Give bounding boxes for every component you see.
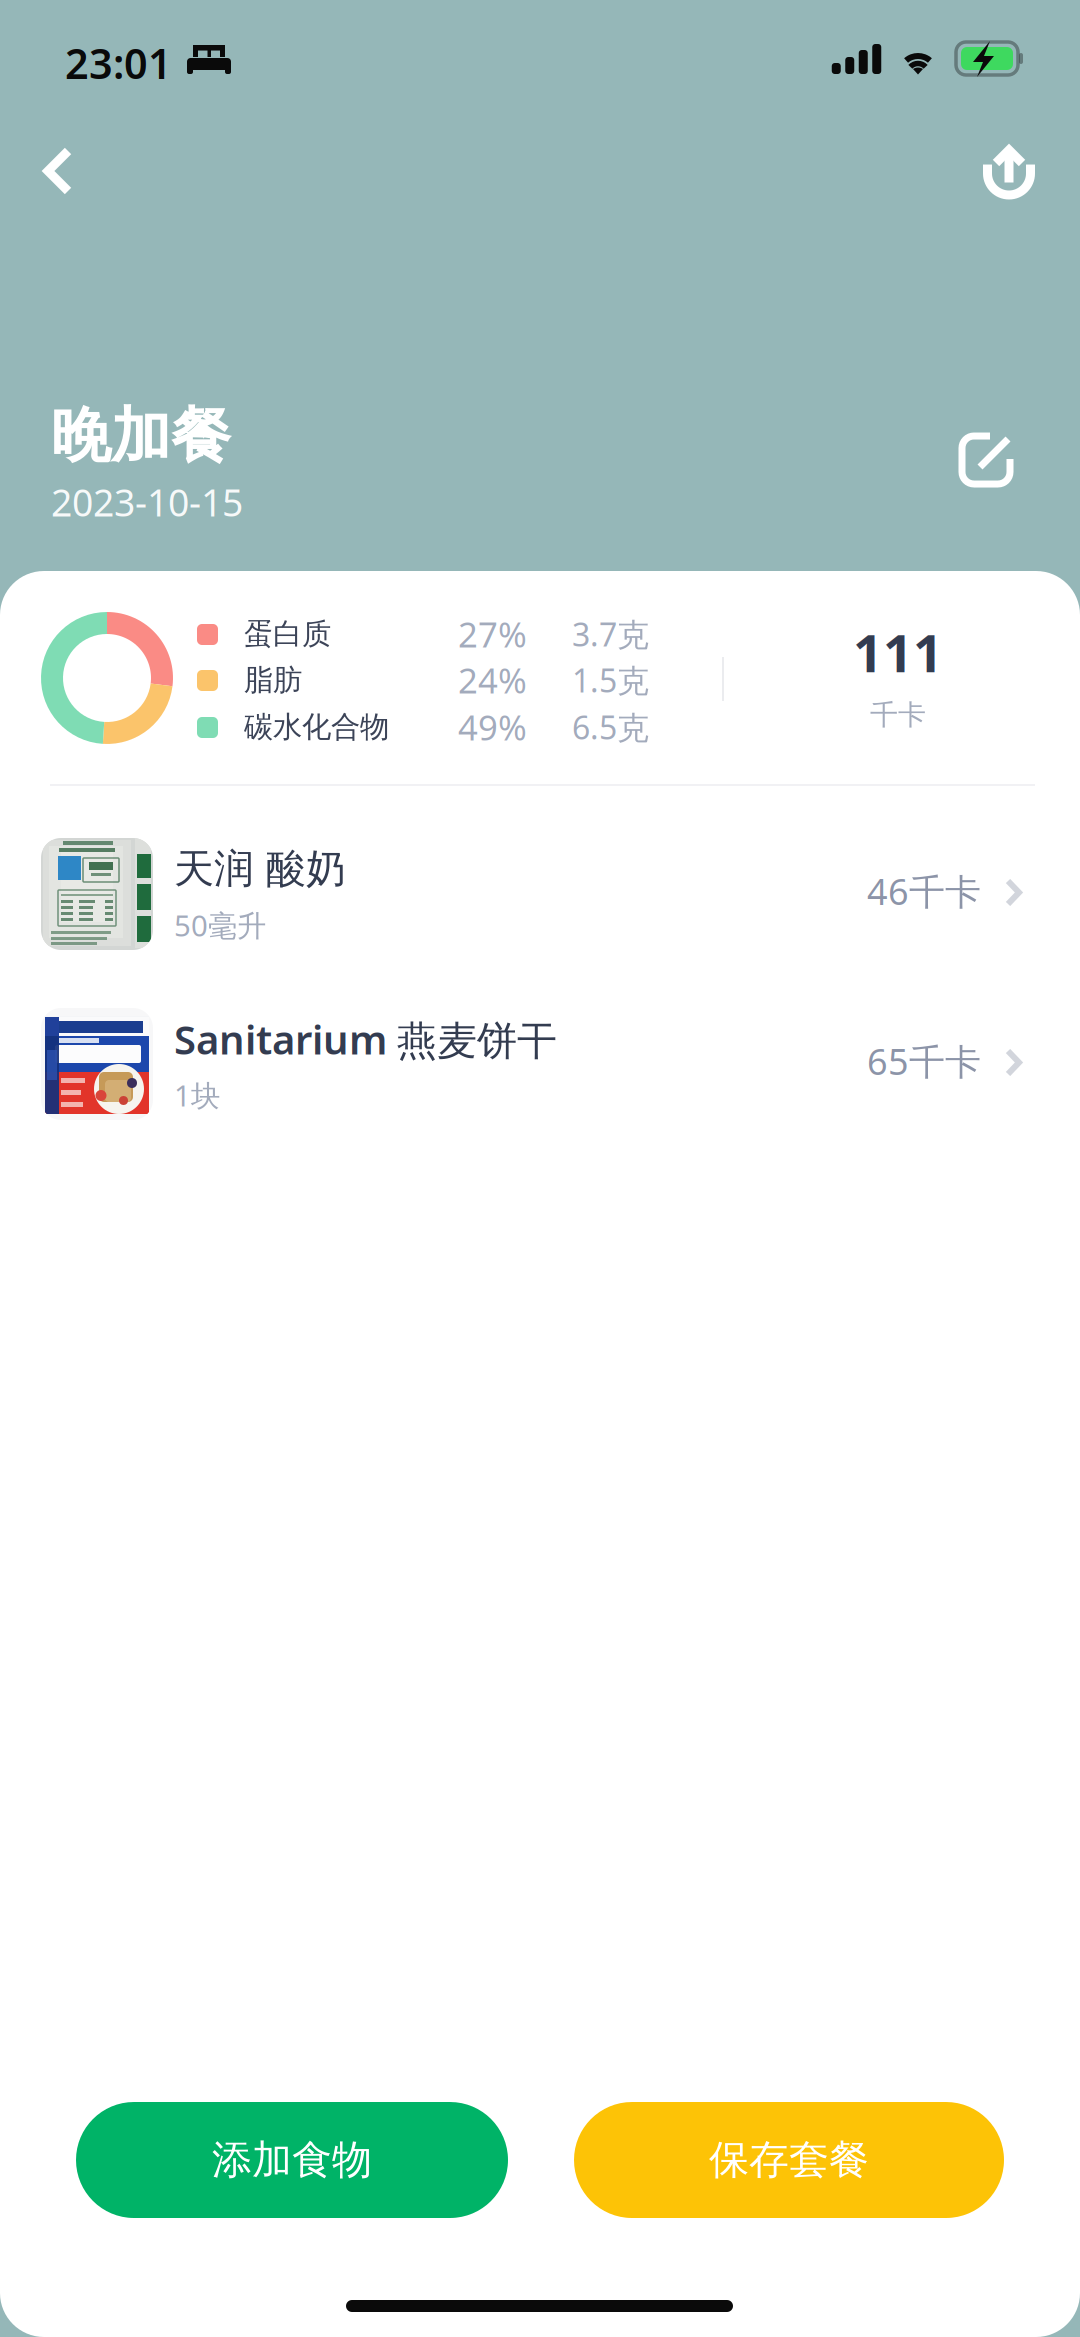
staticText: 65千卡 [867,1037,981,1085]
button[interactable]: 添加食物 [76,2102,508,2218]
staticText: 脂肪 [244,662,302,698]
staticText: 碳水化合物 [244,709,389,745]
staticText: 晚加餐 [51,399,231,473]
staticText: 1块 [174,1075,220,1114]
staticText: 1.5克 [572,659,649,701]
staticText: 6.5克 [572,706,649,748]
staticText: 蛋白质 [244,616,331,652]
staticText: 天润 酸奶 [174,844,346,893]
staticText: 46千卡 [867,867,981,915]
button[interactable]: 天润 酸奶 [0,809,1080,975]
staticText: 保存套餐 [709,2135,869,2184]
button[interactable]: Share [961,128,1057,214]
staticText: 49% [458,704,527,750]
staticText: 3.7克 [572,613,649,655]
staticText: 24% [458,657,527,703]
staticText: 2023-10-15 [51,477,243,527]
staticText: 千卡 [870,698,926,732]
staticText: 50毫升 [174,905,266,944]
button[interactable]: Back [10,131,106,211]
button[interactable]: 保存套餐 [574,2102,1004,2218]
staticText: 23:01 [65,36,172,90]
staticText: 111 [853,617,943,687]
staticText: Sanitarium 燕麦饼干 [174,1012,557,1066]
staticText: 27% [458,611,527,657]
button[interactable]: Edit [930,414,1042,506]
staticText: 添加食物 [212,2135,372,2184]
button[interactable]: Sanitarium 燕麦饼干 [0,979,1080,1145]
